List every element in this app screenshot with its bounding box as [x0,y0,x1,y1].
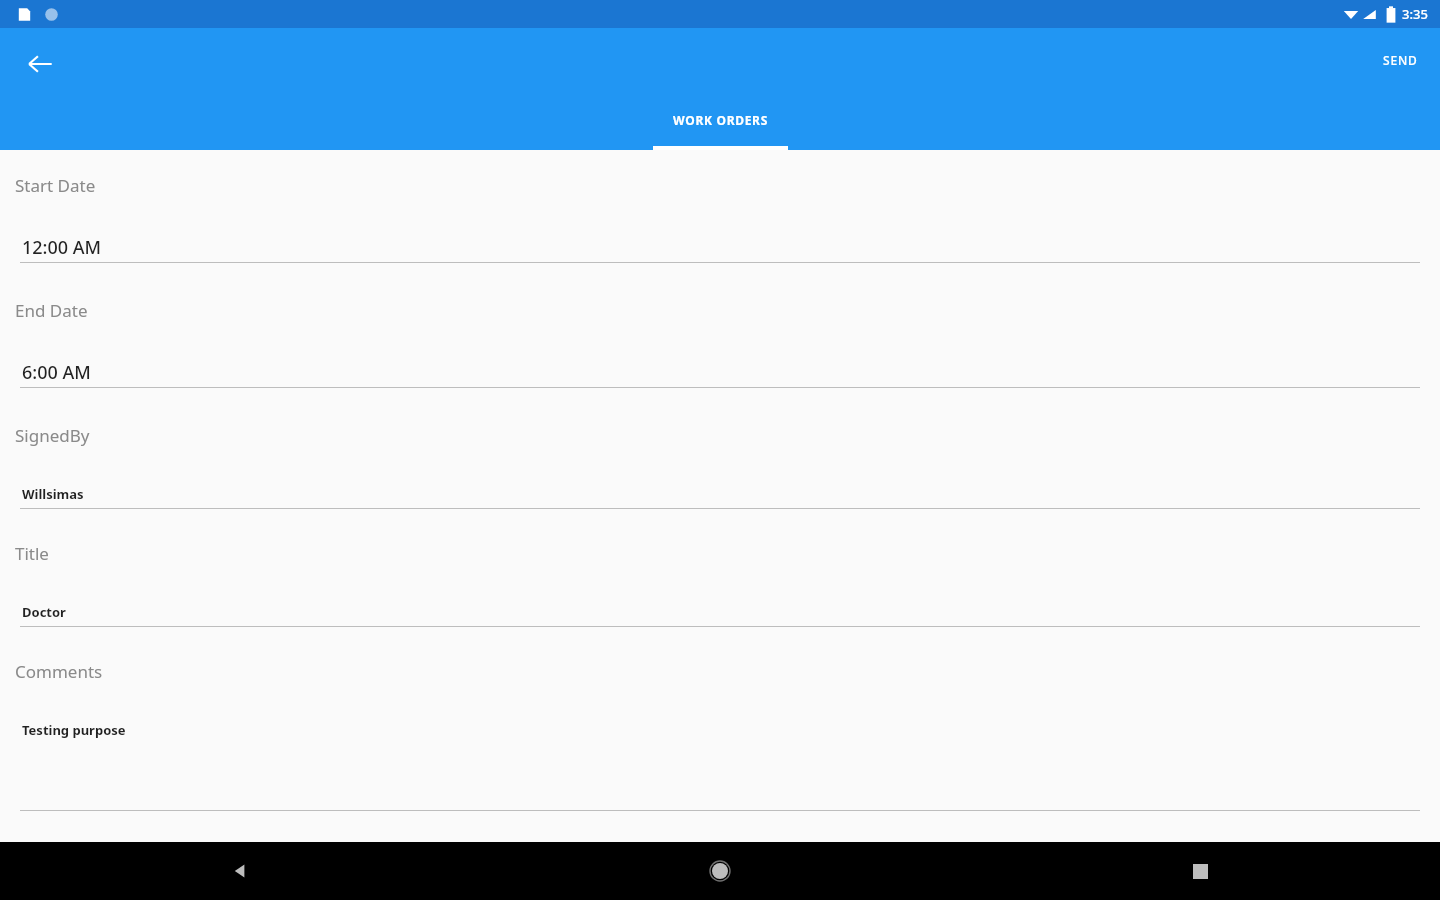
button[interactable]: Back [16,40,64,88]
staticText: Willsimas [22,485,84,503]
button[interactable]: Willsimas [22,485,84,503]
button[interactable]: Title [15,542,49,565]
button[interactable]: Home [480,842,960,900]
button[interactable]: SignedBy [15,424,90,447]
button[interactable]: Doctor [22,603,66,621]
button[interactable]: Recent apps [960,842,1440,900]
button[interactable]: Start Date [15,174,96,197]
button[interactable]: Back [0,842,480,900]
staticText: End Date [15,299,88,322]
staticText: SignedBy [15,424,90,447]
staticText: Start Date [15,174,96,197]
staticText: 12:00 AM [22,235,102,260]
button[interactable]: Testing purpose [22,721,126,739]
staticText: Title [15,542,49,565]
button[interactable]: 6:00 AM [22,360,91,385]
button[interactable]: 12:00 AM [22,235,102,260]
staticText: WORK ORDERS [673,112,768,128]
button[interactable]: WORK ORDERS [653,102,788,150]
staticText: SEND [1383,52,1418,68]
staticText: Comments [15,660,103,683]
button[interactable]: End Date [15,299,88,322]
staticText: Doctor [22,603,66,621]
staticText: 3:35 [1402,5,1428,23]
staticText: Testing purpose [22,721,126,739]
staticText: 6:00 AM [22,360,91,385]
button[interactable]: SEND [1369,42,1432,78]
button[interactable]: Comments [15,660,103,683]
